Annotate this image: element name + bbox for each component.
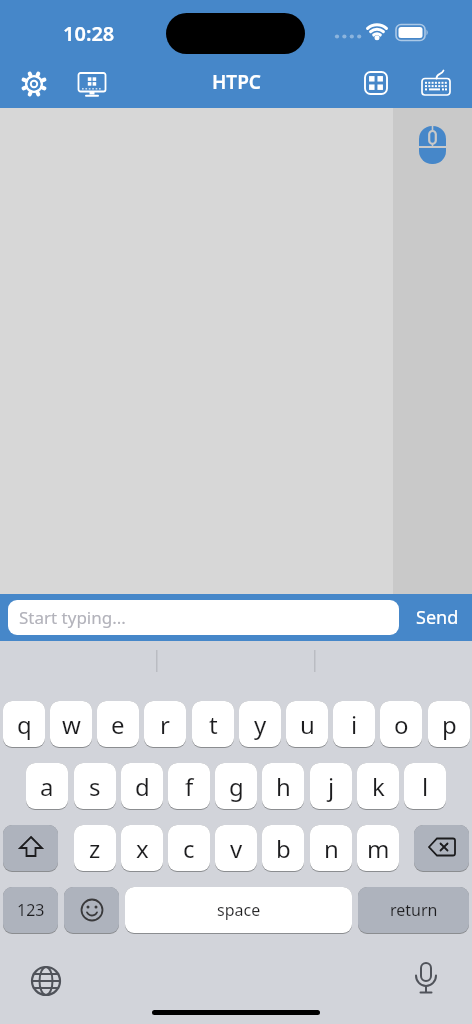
button[interactable]: u <box>286 701 328 748</box>
staticText: 10:28 <box>63 20 115 46</box>
staticText: c <box>183 832 195 865</box>
staticText: w <box>62 708 81 741</box>
button[interactable]: i <box>333 701 375 748</box>
button[interactable] <box>30 965 62 997</box>
staticText: g <box>229 770 244 803</box>
button[interactable]: p <box>428 701 470 748</box>
staticText: space <box>217 899 261 921</box>
button[interactable]: r <box>144 701 186 748</box>
button[interactable]: t <box>192 701 234 748</box>
staticText: t <box>209 708 218 741</box>
button[interactable]: e <box>97 701 139 748</box>
staticText: u <box>300 708 315 741</box>
button[interactable]: a <box>26 763 68 810</box>
staticText: a <box>40 770 54 803</box>
button[interactable]: k <box>357 763 399 810</box>
button[interactable]: d <box>121 763 163 810</box>
staticText: e <box>111 708 125 741</box>
button[interactable]: q <box>3 701 45 748</box>
button[interactable] <box>0 108 472 594</box>
button[interactable]: z <box>74 825 116 872</box>
button[interactable] <box>78 72 106 97</box>
button[interactable]: 123 <box>3 887 58 934</box>
staticText: z <box>89 832 101 865</box>
staticText: v <box>230 832 243 865</box>
button[interactable]: c <box>168 825 210 872</box>
button[interactable]: j <box>310 763 352 810</box>
button[interactable]: w <box>50 701 92 748</box>
staticText: n <box>324 832 339 865</box>
button[interactable]: space <box>125 887 352 934</box>
button[interactable] <box>3 825 58 872</box>
button[interactable] <box>21 71 47 97</box>
button[interactable]: n <box>310 825 352 872</box>
button[interactable]: b <box>262 825 304 872</box>
staticText: m <box>367 832 390 865</box>
button[interactable]: return <box>358 887 469 934</box>
button[interactable] <box>414 825 469 872</box>
button[interactable] <box>410 961 442 1001</box>
button[interactable]: s <box>74 763 116 810</box>
button[interactable] <box>421 64 451 96</box>
button[interactable]: g <box>215 763 257 810</box>
staticText: d <box>135 770 150 803</box>
button[interactable]: h <box>262 763 304 810</box>
staticText: k <box>372 770 385 803</box>
staticText: s <box>89 770 101 803</box>
staticText: j <box>328 770 335 803</box>
staticText: h <box>276 770 291 803</box>
staticText: HTPC <box>212 69 261 95</box>
button[interactable]: x <box>121 825 163 872</box>
staticText: i <box>351 708 358 741</box>
button[interactable]: o <box>380 701 422 748</box>
button[interactable]: l <box>404 763 446 810</box>
button[interactable]: v <box>215 825 257 872</box>
staticText: r <box>160 708 170 741</box>
button[interactable] <box>64 887 119 934</box>
staticText: l <box>422 770 429 803</box>
button[interactable]: m <box>357 825 399 872</box>
staticText: x <box>136 832 149 865</box>
button[interactable] <box>393 108 472 594</box>
button[interactable] <box>419 126 446 164</box>
staticText: b <box>276 832 291 865</box>
button[interactable]: f <box>168 763 210 810</box>
staticText: f <box>185 770 194 803</box>
button[interactable]: Send <box>403 594 472 641</box>
button[interactable]: HTPC <box>196 68 276 96</box>
button[interactable]: Start typing... <box>8 600 399 635</box>
staticText: p <box>442 708 457 741</box>
staticText: q <box>17 708 32 741</box>
staticText: 123 <box>17 899 45 921</box>
staticText: y <box>254 708 267 741</box>
staticText: o <box>394 708 409 741</box>
button[interactable] <box>364 71 388 95</box>
staticText: Send <box>416 605 459 630</box>
staticText: return <box>390 899 438 921</box>
button[interactable]: y <box>239 701 281 748</box>
staticText: Start typing... <box>19 606 126 629</box>
